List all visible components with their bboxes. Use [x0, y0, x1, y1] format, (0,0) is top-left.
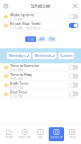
staticText: Scheduler: [50, 135, 62, 139]
staticText: Scheduler: [31, 3, 51, 9]
button[interactable]: Close: [70, 0, 81, 12]
button[interactable]: Settings: [0, 0, 12, 12]
staticText: Weekdays: [9, 53, 26, 58]
staticText: 9:00 AM: [10, 77, 23, 81]
button[interactable]: Scheduler: [49, 127, 64, 141]
staticText: 8:00 PM: [10, 95, 23, 98]
staticText: Time to Potty: [10, 72, 32, 77]
button[interactable]: Weekends: [32, 52, 57, 59]
button[interactable]: Wake up time: [0, 12, 81, 21]
staticText: Brush Your Teeth: [10, 21, 40, 26]
staticText: PM: [49, 37, 54, 41]
button[interactable]: Time to Exercise: [0, 63, 81, 72]
button[interactable]: Weekdays: [7, 52, 31, 59]
staticText: 7:30 AM: [10, 17, 23, 21]
staticText: Bed Time: [10, 89, 27, 95]
staticText: Weekends: [34, 53, 51, 58]
button[interactable]: Reminders: [17, 127, 32, 141]
button[interactable]: Home: [1, 127, 16, 141]
staticText: AM: [39, 37, 44, 41]
staticText: 7:35 AM • Weekdays: [10, 26, 40, 30]
button[interactable]: Bath Time: [0, 81, 81, 90]
staticText: Custom: [60, 53, 72, 58]
staticText: Bath Time: [10, 80, 28, 86]
staticText: Facts: [38, 135, 43, 139]
staticText: More: [69, 135, 75, 139]
button[interactable]: Facts: [33, 127, 48, 141]
button[interactable]: More: [65, 127, 80, 141]
staticText: Wake up time: [10, 12, 34, 17]
staticText: Home: [5, 135, 12, 139]
staticText: Time to Exercise: [10, 63, 39, 68]
staticText: 7:30: [27, 36, 34, 42]
staticText: Reminders: [18, 135, 31, 139]
staticText: 8:00 AM: [10, 68, 23, 72]
staticText: 6:30 PM: [10, 86, 23, 90]
button[interactable]: Bed Time: [0, 90, 81, 98]
button[interactable]: Time to Potty: [0, 72, 81, 81]
button[interactable]: Brush Your Teeth: [0, 21, 81, 30]
button[interactable]: Custom: [58, 52, 74, 59]
